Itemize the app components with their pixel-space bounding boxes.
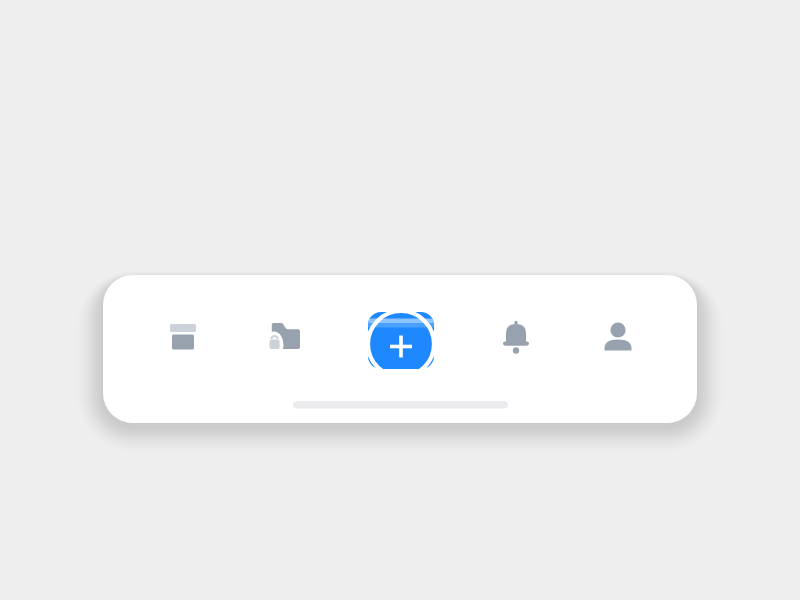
button[interactable]: Notifications bbox=[489, 310, 543, 364]
button[interactable]: Archive bbox=[156, 310, 210, 364]
button[interactable]: Locked folder bbox=[258, 310, 312, 364]
button[interactable]: Profile bbox=[591, 310, 645, 364]
button[interactable]: Create new bbox=[357, 297, 445, 385]
